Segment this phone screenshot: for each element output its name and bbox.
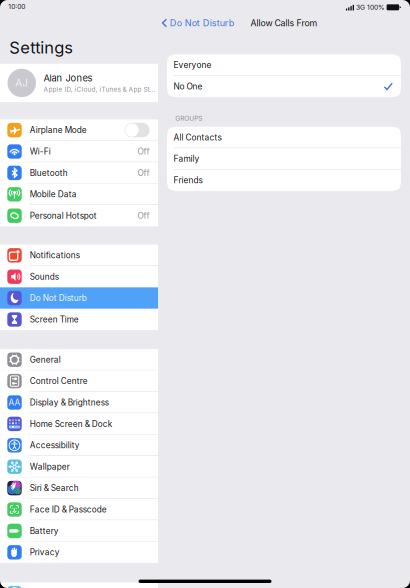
- button[interactable]: AJ: [0, 64, 158, 102]
- button[interactable]: All Contacts: [167, 127, 401, 148]
- button[interactable]: Do Not Disturb: [158, 15, 235, 31]
- button[interactable]: Do Not Disturb: [0, 287, 158, 309]
- staticText: Display & Brightness: [30, 397, 109, 407]
- staticText: Wi-Fi: [30, 146, 51, 156]
- button[interactable]: Control Centre: [0, 370, 158, 392]
- staticText: 10:00: [8, 3, 25, 11]
- staticText: Settings: [9, 37, 73, 57]
- button[interactable]: Siri & Search: [0, 477, 158, 499]
- staticText: Off: [138, 168, 150, 178]
- staticText: Family: [173, 154, 199, 164]
- staticText: 100%: [367, 3, 385, 11]
- button[interactable]: Mobile Data: [0, 184, 158, 205]
- button[interactable]: Accessibility: [0, 435, 158, 456]
- button[interactable]: Wi-Fi: [0, 141, 158, 162]
- button[interactable]: No One: [167, 76, 401, 97]
- button[interactable]: Everyone: [167, 54, 401, 76]
- button[interactable]: Wallpaper: [0, 456, 158, 477]
- button[interactable]: General: [0, 349, 158, 370]
- staticText: Bluetooth: [30, 168, 68, 178]
- staticText: No One: [173, 81, 202, 91]
- button[interactable]: Privacy: [0, 542, 158, 563]
- staticText: Everyone: [173, 60, 211, 70]
- staticText: 3G: [356, 3, 365, 11]
- staticText: Allow Calls From: [250, 18, 317, 28]
- staticText: Personal Hotspot: [30, 211, 97, 221]
- button[interactable]: Notifications: [0, 245, 158, 266]
- staticText: General: [30, 355, 61, 365]
- staticText: Alan Jones: [43, 73, 92, 84]
- button[interactable]: Face ID & Passcode: [0, 499, 158, 520]
- staticText: Mobile Data: [30, 189, 77, 199]
- button[interactable]: Friends: [167, 169, 401, 191]
- staticText: Sounds: [30, 272, 59, 282]
- staticText: Face ID & Passcode: [30, 504, 107, 514]
- staticText: Off: [138, 211, 150, 221]
- staticText: Home Screen & Dock: [30, 419, 113, 429]
- button[interactable]: Family: [167, 148, 401, 169]
- staticText: Privacy: [30, 547, 60, 557]
- staticText: AJ: [15, 77, 28, 89]
- button[interactable]: iTunes & App Store: [0, 582, 158, 588]
- staticText: AA: [8, 397, 20, 407]
- button[interactable]: Battery: [0, 520, 158, 542]
- staticText: Apple ID, iCloud, iTunes & App St...: [43, 85, 155, 93]
- button[interactable]: Home Screen & Dock: [0, 413, 158, 435]
- button[interactable]: Screen Time: [0, 309, 158, 330]
- staticText: Friends: [173, 175, 202, 185]
- staticText: Airplane Mode: [30, 125, 87, 135]
- button[interactable]: Bluetooth: [0, 162, 158, 184]
- staticText: Battery: [30, 526, 59, 536]
- staticText: Siri & Search: [30, 483, 79, 493]
- staticText: Control Centre: [30, 376, 88, 386]
- staticText: Accessibility: [30, 440, 80, 450]
- staticText: Screen Time: [30, 314, 79, 324]
- staticText: Wallpaper: [30, 462, 70, 472]
- button[interactable]: Personal Hotspot: [0, 205, 158, 226]
- staticText: All Contacts: [173, 132, 221, 142]
- staticText: Off: [138, 146, 150, 156]
- staticText: Notifications: [30, 250, 80, 260]
- staticText: GROUPS: [175, 114, 202, 122]
- button[interactable]: Airplane Mode: [0, 119, 158, 141]
- staticText: Do Not Disturb: [170, 17, 235, 28]
- button[interactable]: AA: [0, 392, 158, 413]
- staticText: Do Not Disturb: [30, 293, 87, 303]
- button[interactable]: Sounds: [0, 266, 158, 287]
